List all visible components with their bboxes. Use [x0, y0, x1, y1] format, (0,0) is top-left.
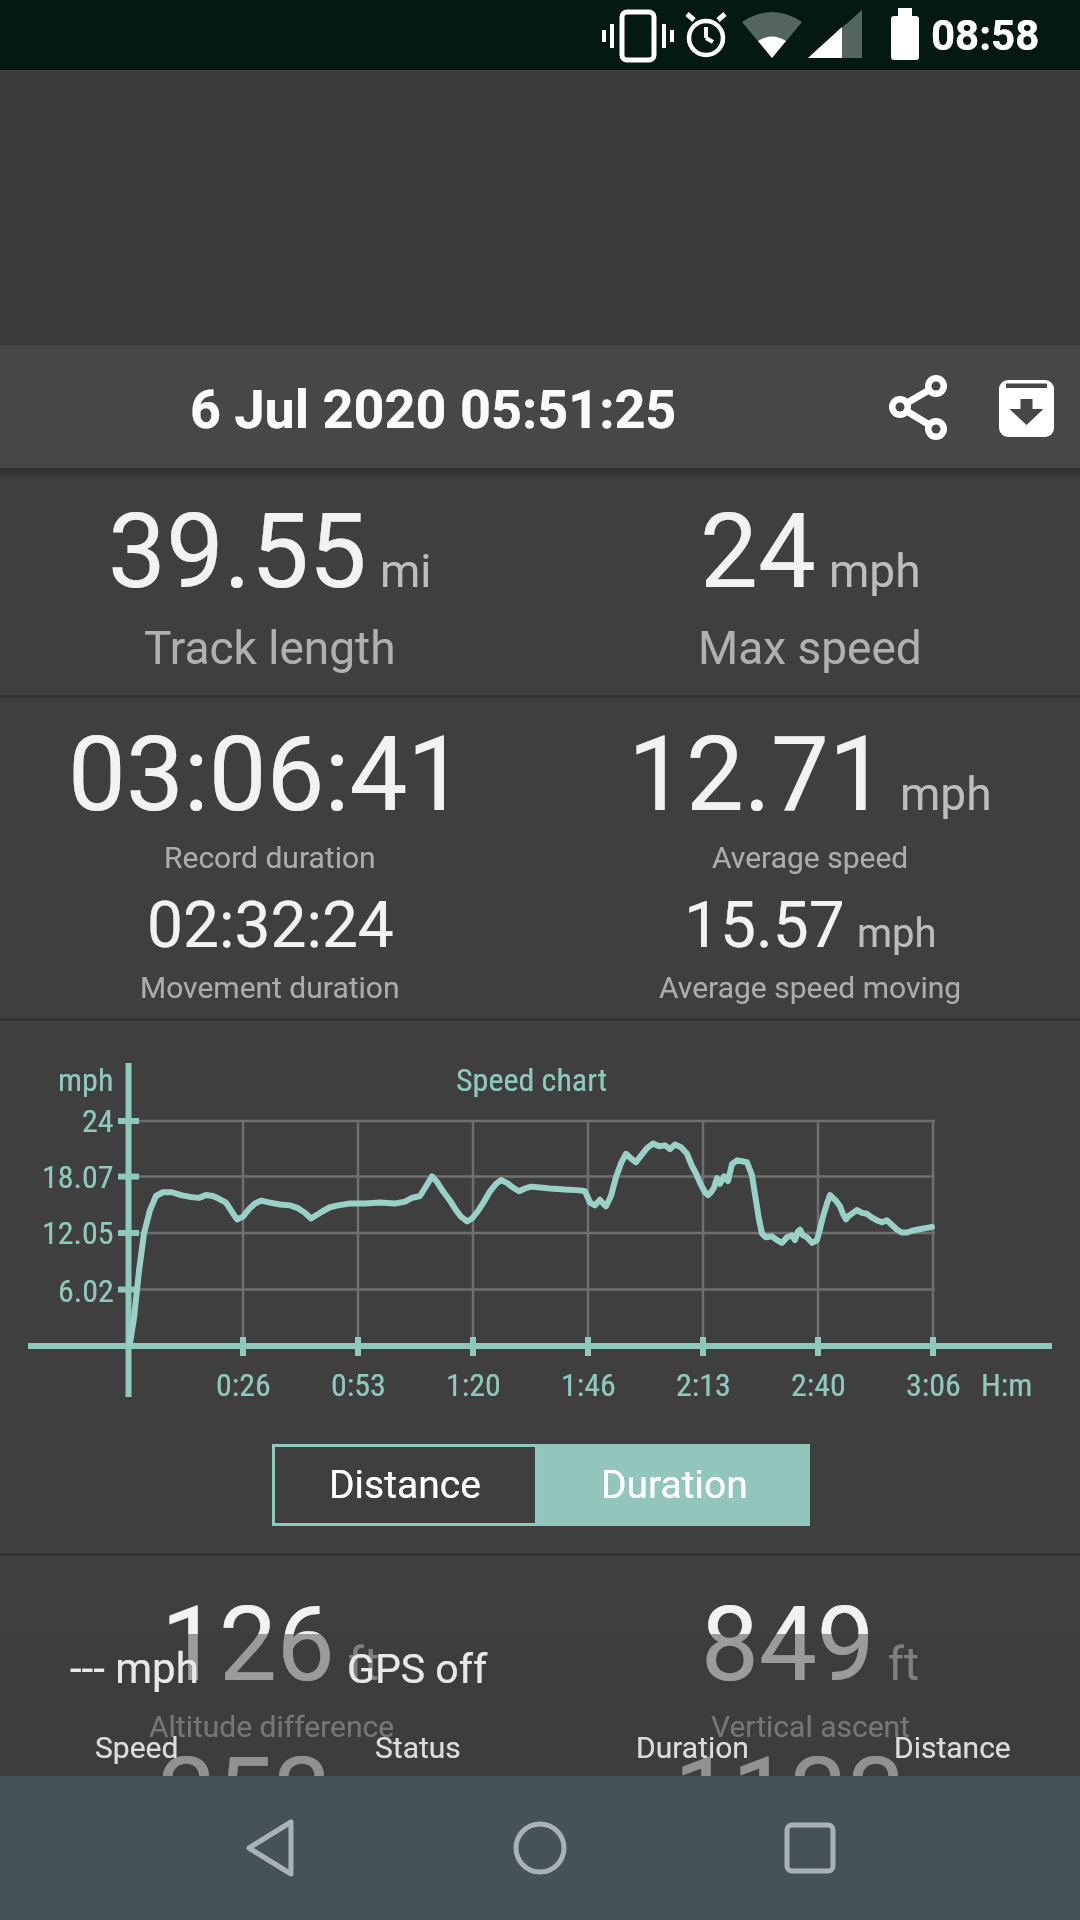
staticText: 08:58: [931, 11, 1040, 60]
staticText: 18.07: [42, 1158, 114, 1196]
staticText: 1:46: [561, 1366, 616, 1404]
staticText: Distance: [894, 1730, 1011, 1765]
staticText: mph: [900, 767, 992, 821]
staticText: 0:53: [331, 1366, 386, 1404]
staticText: 15.57: [684, 888, 845, 963]
staticText: Speed: [95, 1730, 179, 1765]
staticText: mph: [58, 1061, 114, 1099]
staticText: 3:06: [906, 1366, 961, 1404]
staticText: Track length: [144, 621, 396, 675]
staticText: Average speed moving: [659, 970, 962, 1005]
staticText: 12.71: [628, 714, 887, 835]
staticText: 24: [700, 491, 816, 612]
staticText: 12.05: [42, 1214, 114, 1252]
staticText: Movement duration: [140, 970, 400, 1005]
staticText: 0:26: [216, 1366, 271, 1404]
staticText: Duration: [636, 1730, 749, 1765]
staticText: Vertical ascent: [711, 1709, 910, 1744]
staticText: 6.02: [58, 1272, 114, 1310]
button[interactable]: [486, 1794, 594, 1902]
staticText: 849: [701, 1584, 875, 1705]
button[interactable]: Duration: [538, 1444, 810, 1526]
staticText: 02:32:24: [147, 888, 394, 963]
staticText: 24: [82, 1102, 114, 1140]
staticText: ft: [348, 1637, 380, 1691]
button[interactable]: [979, 353, 1075, 458]
staticText: mph: [857, 910, 937, 957]
staticText: --- mph: [70, 1644, 199, 1693]
staticText: 1133: [674, 1735, 906, 1856]
staticText: 39.55: [108, 491, 367, 612]
staticText: mph: [829, 544, 921, 598]
staticText: Record duration: [164, 840, 376, 875]
staticText: GPS off: [347, 1645, 488, 1693]
staticText: 1:20: [446, 1366, 501, 1404]
staticText: mi: [380, 544, 432, 598]
staticText: Altitude difference: [149, 1709, 395, 1744]
staticText: 03:06:41: [68, 714, 466, 835]
staticText: Duration: [601, 1462, 748, 1508]
staticText: 126: [161, 1584, 335, 1705]
staticText: Status: [375, 1730, 461, 1765]
button[interactable]: [216, 1794, 324, 1902]
button[interactable]: Distance: [272, 1444, 538, 1526]
staticText: 2:40: [791, 1366, 846, 1404]
staticText: 253: [158, 1735, 332, 1856]
staticText: H:m: [981, 1366, 1033, 1404]
staticText: Speed chart: [456, 1061, 608, 1099]
staticText: ft: [888, 1637, 920, 1691]
staticText: Average speed: [712, 840, 909, 875]
staticText: Distance: [329, 1462, 481, 1508]
staticText: 2:13: [676, 1366, 731, 1404]
staticText: Max speed: [698, 621, 922, 675]
button[interactable]: [866, 353, 971, 458]
button[interactable]: [756, 1794, 864, 1902]
staticText: 6 Jul 2020 05:51:25: [190, 378, 677, 441]
